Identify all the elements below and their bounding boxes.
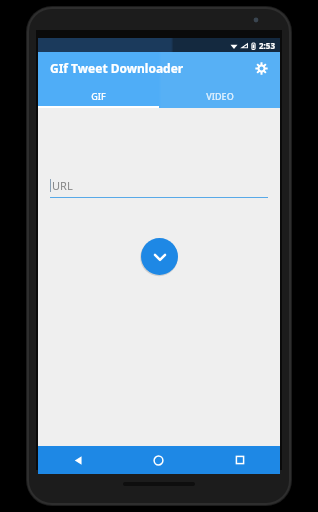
staticText: URL [52, 178, 73, 193]
button[interactable]: Recent apps [199, 446, 280, 474]
button[interactable]: GIF [38, 84, 159, 108]
button[interactable]: Home [118, 446, 199, 474]
staticText: VIDEO [206, 90, 234, 102]
button[interactable]: VIDEO [159, 84, 280, 108]
staticText: 2:53 [259, 40, 275, 51]
button[interactable]: URL [50, 178, 268, 198]
button[interactable]: Download [141, 238, 178, 275]
staticText: GIf Tweet Downloader [50, 60, 184, 76]
staticText: GIF [91, 90, 106, 102]
button[interactable]: Settings [250, 57, 272, 79]
button[interactable]: Back [38, 446, 118, 474]
